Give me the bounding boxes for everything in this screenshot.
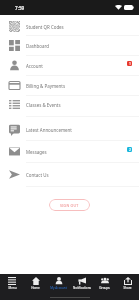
staticText: Account (26, 63, 43, 69)
button[interactable]: Notifications (70, 274, 93, 296)
button[interactable]: Student QR Codes (0, 17, 139, 36)
staticText: 7:59 (15, 5, 25, 11)
staticText: Menu (8, 286, 17, 290)
button[interactable]: Menu (0, 274, 24, 296)
button[interactable]: Latest Announcement (0, 120, 139, 139)
staticText: 2 (129, 147, 131, 152)
button[interactable]: Share (116, 274, 139, 296)
staticText: Home (31, 286, 40, 290)
staticText: Classes & Events (26, 102, 61, 108)
staticText: My Account (50, 286, 67, 290)
button[interactable]: Contact Us (0, 165, 139, 184)
staticText: Share (123, 286, 132, 290)
staticText: Contact Us (26, 172, 49, 178)
staticText: Dashboard (26, 43, 49, 49)
button[interactable]: Account (0, 56, 139, 75)
staticText: Messages (26, 149, 47, 155)
button[interactable]: Billing & Payments (0, 76, 139, 95)
button[interactable]: My Account (47, 274, 70, 296)
button[interactable]: SIGN OUT (49, 199, 90, 211)
staticText: Notifications (73, 286, 91, 290)
button[interactable]: Classes & Events (0, 95, 139, 114)
staticText: SIGN OUT (60, 203, 79, 208)
button[interactable]: Home (24, 274, 47, 296)
staticText: 1 (129, 61, 131, 66)
staticText: Billing & Payments (26, 83, 66, 89)
button[interactable]: Dashboard (0, 36, 139, 55)
staticText: Groups (99, 286, 110, 290)
staticText: Student QR Codes (26, 24, 64, 30)
staticText: Latest Announcement (26, 127, 72, 133)
button[interactable]: Groups (93, 274, 116, 296)
button[interactable]: Messages (0, 142, 139, 161)
